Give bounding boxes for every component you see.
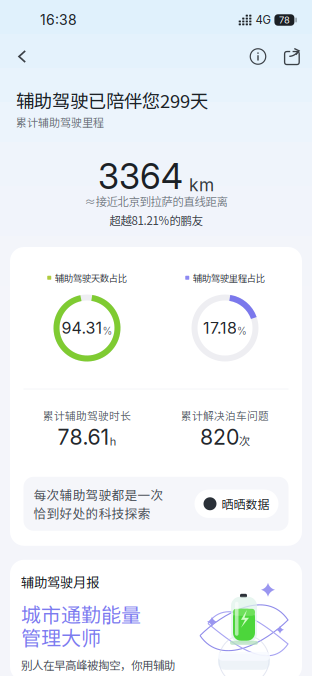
staticText: 辅助驾驶里程占比 xyxy=(193,271,265,284)
staticText: % xyxy=(102,325,112,337)
staticText: 次 xyxy=(239,432,250,449)
button[interactable]: Back xyxy=(0,40,48,73)
staticText: 辅助驾驶天数占比 xyxy=(55,271,127,284)
staticText: 78 xyxy=(279,14,290,26)
staticText: 累计解决泊车问题 xyxy=(181,407,269,423)
staticText: 94.31 xyxy=(61,318,102,338)
staticText: 17.18 xyxy=(203,318,237,338)
staticText: 16:38 xyxy=(40,11,77,28)
staticText: 超越81.21%的鹏友 xyxy=(109,212,202,228)
staticText: 辅助驾驶已陪伴您299天 xyxy=(16,87,208,113)
button[interactable]: Share xyxy=(276,40,308,73)
staticText: 城市通勤能量 xyxy=(21,599,141,628)
staticText: h xyxy=(109,432,116,449)
staticText: % xyxy=(237,325,247,337)
staticText: 晒晒数据 xyxy=(221,495,269,512)
staticText: 别人在早高峰被掏空，你用辅助 xyxy=(21,656,175,673)
staticText: 3364 xyxy=(98,155,183,197)
staticText: 累计辅助驾驶里程 xyxy=(16,114,104,130)
staticText: 辅助驾驶月报 xyxy=(21,572,99,591)
staticText: km xyxy=(189,174,214,195)
staticText: 累计辅助驾驶时长 xyxy=(43,407,131,423)
staticText: 78.61 xyxy=(57,424,109,450)
button[interactable]: 晒晒数据 xyxy=(194,490,278,518)
button[interactable]: Information xyxy=(240,40,276,73)
staticText: 4G xyxy=(255,13,270,27)
staticText: 每次辅助驾驶都是一次恰到好处的科技探索 xyxy=(33,485,163,522)
staticText: ≈接近北京到拉萨的直线距离 xyxy=(84,193,227,209)
staticText: 820 xyxy=(200,424,239,450)
staticText: 管理大师 xyxy=(21,622,101,651)
